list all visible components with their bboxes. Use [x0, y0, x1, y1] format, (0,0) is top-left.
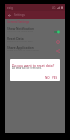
- staticText: Settings: [14, 13, 25, 17]
- button[interactable]: Show Notification: [5, 27, 65, 37]
- button[interactable]: YES: [51, 75, 59, 81]
- button[interactable]: Reset Data: [5, 37, 65, 47]
- button[interactable]: Back: [6, 11, 12, 19]
- staticText: Reset Data: [7, 37, 24, 41]
- staticText: Do you want to reset data?: [12, 63, 55, 67]
- staticText: General Settings: [7, 20, 30, 24]
- staticText: Show Notification: [7, 27, 34, 31]
- staticText: Share this app to your friends: [7, 49, 39, 52]
- button[interactable]: NO: [44, 75, 51, 81]
- staticText: All data will be removed.: [12, 66, 42, 70]
- staticText: ezig: [7, 6, 14, 10]
- button[interactable]: Share Application: [5, 46, 65, 56]
- staticText: NO: [45, 76, 50, 80]
- staticText: YES: [52, 76, 58, 80]
- staticText: 4G: [52, 6, 56, 10]
- staticText: Share Application: [7, 46, 34, 50]
